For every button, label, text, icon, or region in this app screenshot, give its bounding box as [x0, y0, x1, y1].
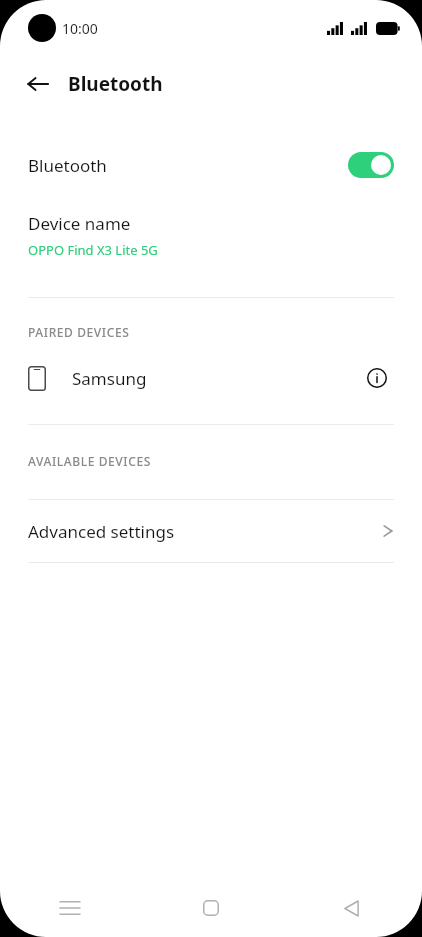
button[interactable]: Recent apps — [0, 879, 140, 937]
button[interactable]: Bluetooth on — [348, 152, 394, 178]
staticText: PAIRED DEVICES — [28, 324, 130, 340]
staticText: OPPO Find X3 Lite 5G — [28, 241, 158, 259]
staticText: 10:00 — [62, 19, 98, 38]
button[interactable]: Device info — [360, 361, 394, 395]
staticText: AVAILABLE DEVICES — [28, 453, 151, 469]
staticText: Device name — [28, 212, 131, 235]
button[interactable]: Home — [140, 879, 281, 937]
button[interactable]: Samsung — [0, 354, 422, 402]
button[interactable]: Advanced settings — [0, 500, 422, 562]
button[interactable]: Bluetooth — [0, 142, 422, 188]
staticText: Bluetooth — [68, 71, 163, 97]
button[interactable]: Device name — [0, 212, 422, 259]
button[interactable]: Back — [281, 879, 422, 937]
staticText: Bluetooth — [28, 154, 107, 177]
staticText: Samsung — [72, 367, 147, 390]
button[interactable]: Back — [18, 64, 58, 104]
staticText: Advanced settings — [28, 520, 175, 543]
